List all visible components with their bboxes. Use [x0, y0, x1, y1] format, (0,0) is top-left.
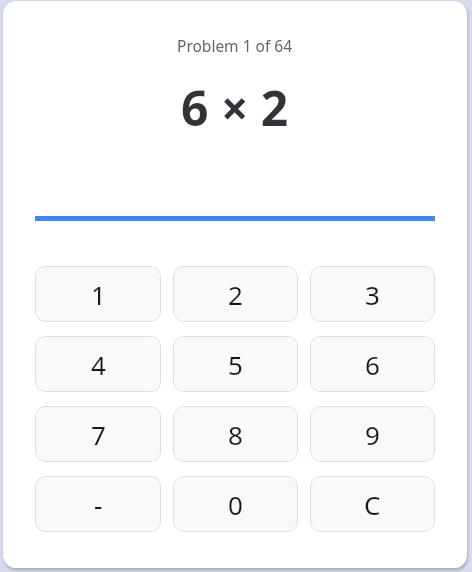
staticText: Problem 1 of 64 — [177, 35, 293, 56]
staticText: C — [364, 487, 381, 522]
button[interactable]: 4 — [35, 336, 161, 392]
staticText: 2 — [228, 277, 243, 312]
button[interactable]: C — [310, 476, 435, 532]
staticText: 8 — [228, 417, 243, 452]
staticText: 6 × 2 — [181, 75, 289, 140]
button[interactable]: - — [35, 476, 161, 532]
staticText: 5 — [228, 347, 243, 382]
staticText: 4 — [91, 347, 106, 382]
staticText: 9 — [365, 417, 380, 452]
button[interactable]: 8 — [173, 406, 298, 462]
staticText: 3 — [365, 277, 380, 312]
button[interactable]: 0 — [173, 476, 298, 532]
staticText: - — [94, 487, 103, 522]
button[interactable]: 7 — [35, 406, 161, 462]
button[interactable]: 2 — [173, 266, 298, 322]
button[interactable]: 5 — [173, 336, 298, 392]
button[interactable]: 3 — [310, 266, 435, 322]
staticText: 0 — [228, 487, 243, 522]
staticText: 1 — [91, 277, 106, 312]
staticText: 6 — [365, 347, 380, 382]
button[interactable]: 1 — [35, 266, 161, 322]
button[interactable]: 9 — [310, 406, 435, 462]
staticText: 7 — [91, 417, 106, 452]
button[interactable]: 6 — [310, 336, 435, 392]
